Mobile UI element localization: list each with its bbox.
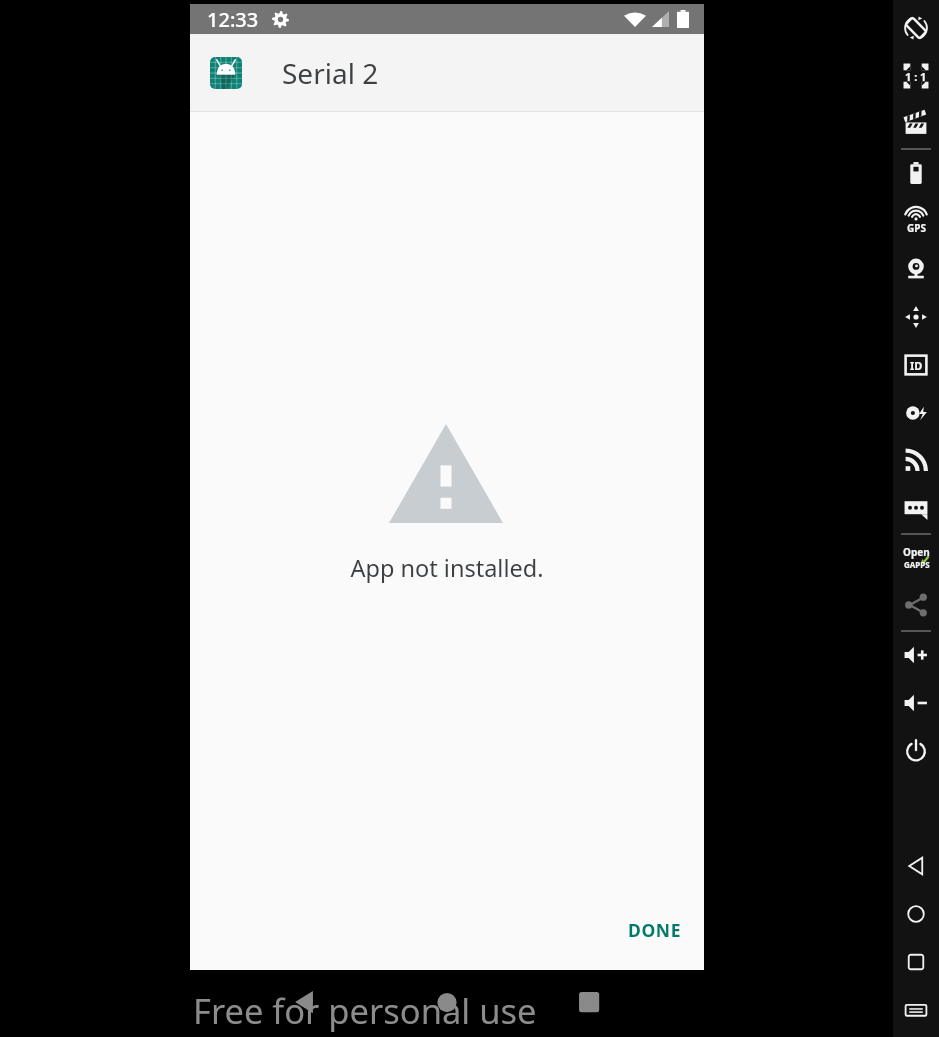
button[interactable]: Back [288,984,320,1016]
button[interactable]: Share [900,582,932,628]
button[interactable]: Directional pad [900,294,932,340]
staticText: Serial 2 [282,54,379,92]
button[interactable]: Volume down [900,680,932,726]
button[interactable]: Menu [900,987,932,1033]
button[interactable]: Device ID [900,342,932,388]
button[interactable]: Record screen [900,101,932,147]
staticText: Free for personal use [193,987,537,1034]
button[interactable]: Recent apps [572,984,604,1016]
button[interactable]: Home [900,891,932,937]
button[interactable]: GPS [900,198,932,244]
button[interactable]: Home [431,984,463,1016]
button[interactable]: Volume up [900,632,932,678]
staticText: GPS [907,221,926,235]
button[interactable]: Power [900,728,932,774]
button[interactable]: Messages [900,486,932,532]
staticText: DONE [628,918,682,942]
button[interactable]: Battery [900,150,932,196]
button[interactable]: Disk [900,390,932,436]
staticText: App not installed. [190,552,704,584]
button[interactable]: Camera [900,246,932,292]
button[interactable]: Rotate [900,5,932,51]
staticText: ID [910,358,923,373]
staticText: 12:33 [207,6,259,33]
button[interactable]: DONE [610,904,700,956]
button[interactable]: Zoom 1:1 [900,53,932,99]
button[interactable]: Back [900,843,932,889]
staticText: GAPPS [904,559,930,570]
staticText: Open [903,545,930,559]
button[interactable]: Open GApps [900,534,932,580]
button[interactable]: Cellular [900,438,932,484]
button[interactable]: Overview [900,939,932,985]
staticText: 1 : 1 [905,69,927,84]
